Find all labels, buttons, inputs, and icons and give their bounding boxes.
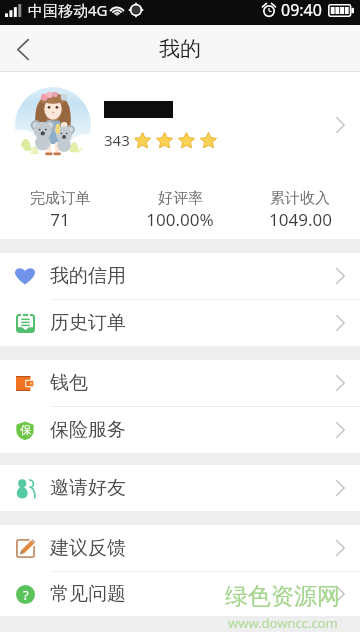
staticText: 建议反馈 <box>50 536 126 560</box>
staticText: 绿色资源网 <box>225 582 340 611</box>
staticText: 我的信用 <box>50 264 126 288</box>
staticText: 完成订单 <box>30 189 90 208</box>
staticText: ? <box>23 586 29 604</box>
staticText: 我的 <box>159 36 201 62</box>
staticText: 常见问题 <box>50 582 126 606</box>
staticText: 09:40 <box>281 0 322 21</box>
button[interactable]: ? <box>0 572 360 616</box>
staticText: www.downcc.com <box>228 614 338 632</box>
button[interactable]: 保 <box>0 407 360 453</box>
staticText: 保 <box>20 423 31 437</box>
button[interactable]: 我的信用 <box>0 253 360 299</box>
staticText: 71 <box>50 208 70 231</box>
staticText: 邀请好友 <box>50 476 126 500</box>
staticText: 好评率 <box>158 189 203 208</box>
staticText: 历史订单 <box>50 311 126 335</box>
button[interactable]: 343 <box>0 72 360 178</box>
button[interactable]: 历史订单 <box>0 300 360 346</box>
button[interactable]: Back <box>0 26 46 72</box>
staticText: 累计收入 <box>270 189 330 208</box>
staticText: 中国移动4G <box>28 0 108 20</box>
staticText: 1049.00 <box>269 208 332 231</box>
staticText: 343 <box>104 130 130 150</box>
button[interactable]: 建议反馈 <box>0 525 360 571</box>
staticText: 100.00% <box>146 208 214 231</box>
button[interactable]: 钱包 <box>0 360 360 406</box>
button[interactable]: 邀请好友 <box>0 465 360 511</box>
staticText: 保险服务 <box>50 418 126 442</box>
staticText: 钱包 <box>50 371 88 395</box>
